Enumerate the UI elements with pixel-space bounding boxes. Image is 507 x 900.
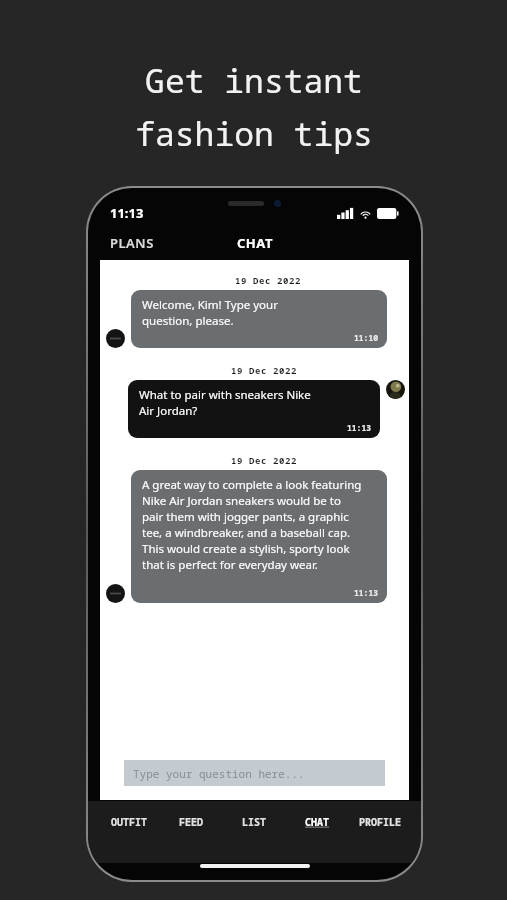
button[interactable]: CHAT bbox=[227, 230, 283, 256]
staticText: 11:13 bbox=[347, 422, 371, 433]
staticText: FEED bbox=[179, 815, 203, 829]
staticText: 11:10 bbox=[354, 332, 378, 343]
staticText: Get instant bbox=[145, 58, 363, 103]
button[interactable]: What to pair with sneakers Nike bbox=[128, 380, 380, 438]
staticText: Welcome, Kim! Type your bbox=[142, 297, 278, 313]
staticText: What to pair with sneakers Nike bbox=[139, 387, 311, 403]
staticText: CHAT bbox=[237, 234, 273, 252]
button[interactable]: LIST bbox=[222, 809, 285, 835]
staticText: LIST bbox=[242, 815, 266, 829]
staticText: PLANS bbox=[110, 234, 154, 252]
staticText: Nike Air Jordan sneakers would be to bbox=[142, 493, 341, 509]
staticText: 19 Dec 2022 bbox=[231, 454, 298, 466]
staticText: tee, a windbreaker, and a baseball cap. bbox=[142, 525, 351, 541]
staticText: question, please. bbox=[142, 313, 234, 329]
button[interactable]: CHAT bbox=[285, 809, 348, 835]
staticText: A great way to complete a look featuring bbox=[142, 477, 362, 493]
button[interactable]: Type your question here... bbox=[124, 760, 385, 786]
staticText: Air Jordan? bbox=[139, 403, 198, 419]
button[interactable]: Your avatar bbox=[386, 380, 405, 399]
staticText: CHAT bbox=[305, 815, 329, 829]
staticText: OUTFIT bbox=[111, 815, 147, 829]
button[interactable]: Assistant avatar bbox=[106, 584, 125, 603]
staticText: fashion tips bbox=[135, 111, 373, 156]
staticText: 19 Dec 2022 bbox=[231, 364, 298, 376]
staticText: This would create a stylish, sporty look bbox=[142, 541, 350, 557]
staticText: Type your question here... bbox=[133, 766, 305, 781]
staticText: 11:13 bbox=[354, 587, 378, 598]
button[interactable]: PLANS bbox=[100, 230, 164, 256]
staticText: that is perfect for everyday wear. bbox=[142, 557, 318, 573]
staticText: pair them with jogger pants, a graphic bbox=[142, 509, 349, 525]
button[interactable]: OUTFIT bbox=[98, 809, 160, 835]
staticText: 19 Dec 2022 bbox=[235, 274, 302, 286]
button[interactable]: PROFILE bbox=[348, 809, 411, 835]
staticText: PROFILE bbox=[359, 815, 401, 829]
staticText: 11:13 bbox=[110, 204, 144, 222]
button[interactable]: A great way to complete a look featuring bbox=[131, 470, 387, 603]
button[interactable]: Welcome, Kim! Type your bbox=[131, 290, 387, 348]
button[interactable]: Assistant avatar bbox=[106, 329, 125, 348]
button[interactable]: FEED bbox=[160, 809, 222, 835]
